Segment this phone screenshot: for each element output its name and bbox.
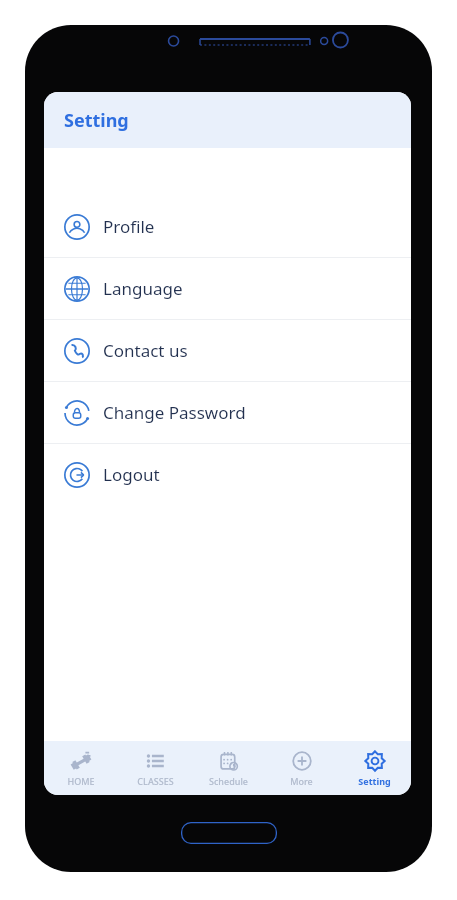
button[interactable]: Contact us (44, 320, 411, 381)
button[interactable]: Logout (44, 444, 411, 505)
button[interactable]: HOME (44, 741, 118, 795)
staticText: Setting (358, 775, 391, 787)
button[interactable]: Setting (338, 741, 411, 795)
staticText: Schedule (209, 775, 248, 787)
staticText: More (290, 775, 313, 787)
button[interactable]: More (265, 741, 338, 795)
staticText: Setting (64, 108, 129, 133)
staticText: CLASSES (137, 775, 174, 787)
staticText: Change Password (103, 401, 246, 424)
staticText: Language (103, 277, 183, 300)
button[interactable]: Change Password (44, 382, 411, 443)
staticText: Profile (103, 215, 155, 238)
button[interactable]: CLASSES (118, 741, 192, 795)
button[interactable]: Profile (44, 196, 411, 257)
staticText: HOME (67, 775, 95, 787)
staticText: Contact us (103, 339, 188, 362)
staticText: Logout (103, 463, 160, 486)
button[interactable]: Language (44, 258, 411, 319)
button[interactable]: Schedule (192, 741, 265, 795)
